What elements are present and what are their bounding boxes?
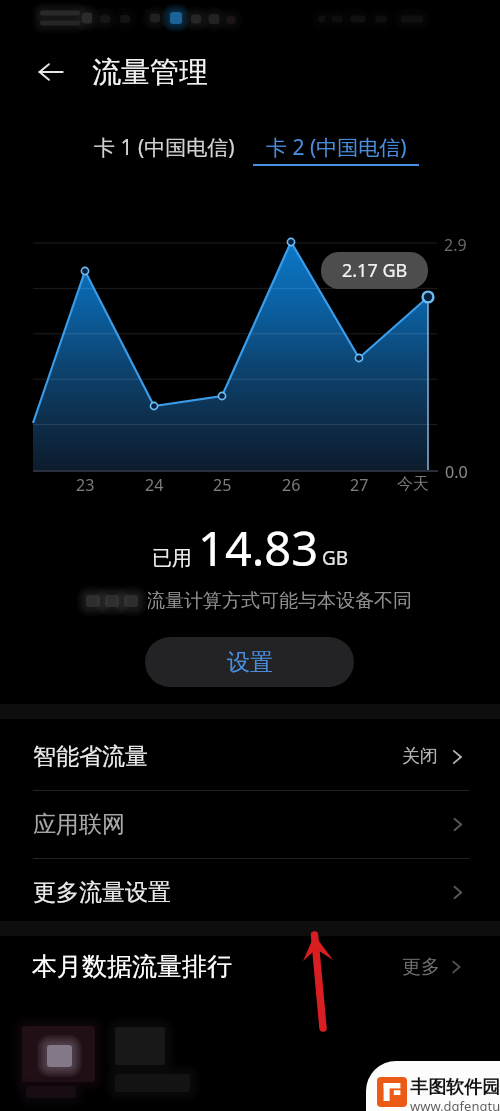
staticText: 已用 xyxy=(152,546,192,571)
staticText: 运营商流量计算方式可能与本设备不同 xyxy=(89,589,412,613)
staticText: 0.0 xyxy=(445,461,468,483)
staticText: 24 xyxy=(145,474,164,496)
staticText: 卡 2 (中国电信) xyxy=(266,133,407,162)
staticText: 卡 1 (中国电信) xyxy=(94,133,235,162)
button[interactable]: Back xyxy=(31,52,71,92)
button[interactable]: 应用联网 xyxy=(0,791,500,858)
staticText: 2.9 xyxy=(444,234,467,256)
button[interactable]: 卡 2 (中国电信) xyxy=(253,122,419,172)
staticText: 25 xyxy=(213,474,232,496)
staticText: 设置 xyxy=(227,648,273,677)
staticText: www.dgfengtu.com xyxy=(410,1097,500,1111)
staticText: 丰图软件园 xyxy=(410,1076,500,1099)
staticText: 更多 xyxy=(402,955,440,979)
staticText: GB xyxy=(322,545,349,571)
button[interactable]: 更多 xyxy=(402,955,464,979)
button[interactable]: 更多流量设置 xyxy=(0,859,500,926)
button[interactable]: 智能省流量 xyxy=(0,723,500,790)
staticText: 23 xyxy=(76,474,95,496)
staticText: 关闭 xyxy=(402,745,438,768)
staticText: 应用联网 xyxy=(33,810,125,839)
staticText: 本月数据流量排行 xyxy=(32,951,232,982)
staticText: 14.83 xyxy=(198,516,319,580)
button[interactable]: 卡 1 (中国电信) xyxy=(82,122,246,172)
staticText: 流量管理 xyxy=(92,54,208,91)
button[interactable]: 设置 xyxy=(145,637,354,687)
staticText: 26 xyxy=(282,474,301,496)
staticText: 今天 xyxy=(397,474,429,494)
staticText: 更多流量设置 xyxy=(33,878,171,907)
staticText: 智能省流量 xyxy=(33,742,148,771)
staticText: 27 xyxy=(350,474,369,496)
staticText: 2.17 GB xyxy=(342,258,408,283)
